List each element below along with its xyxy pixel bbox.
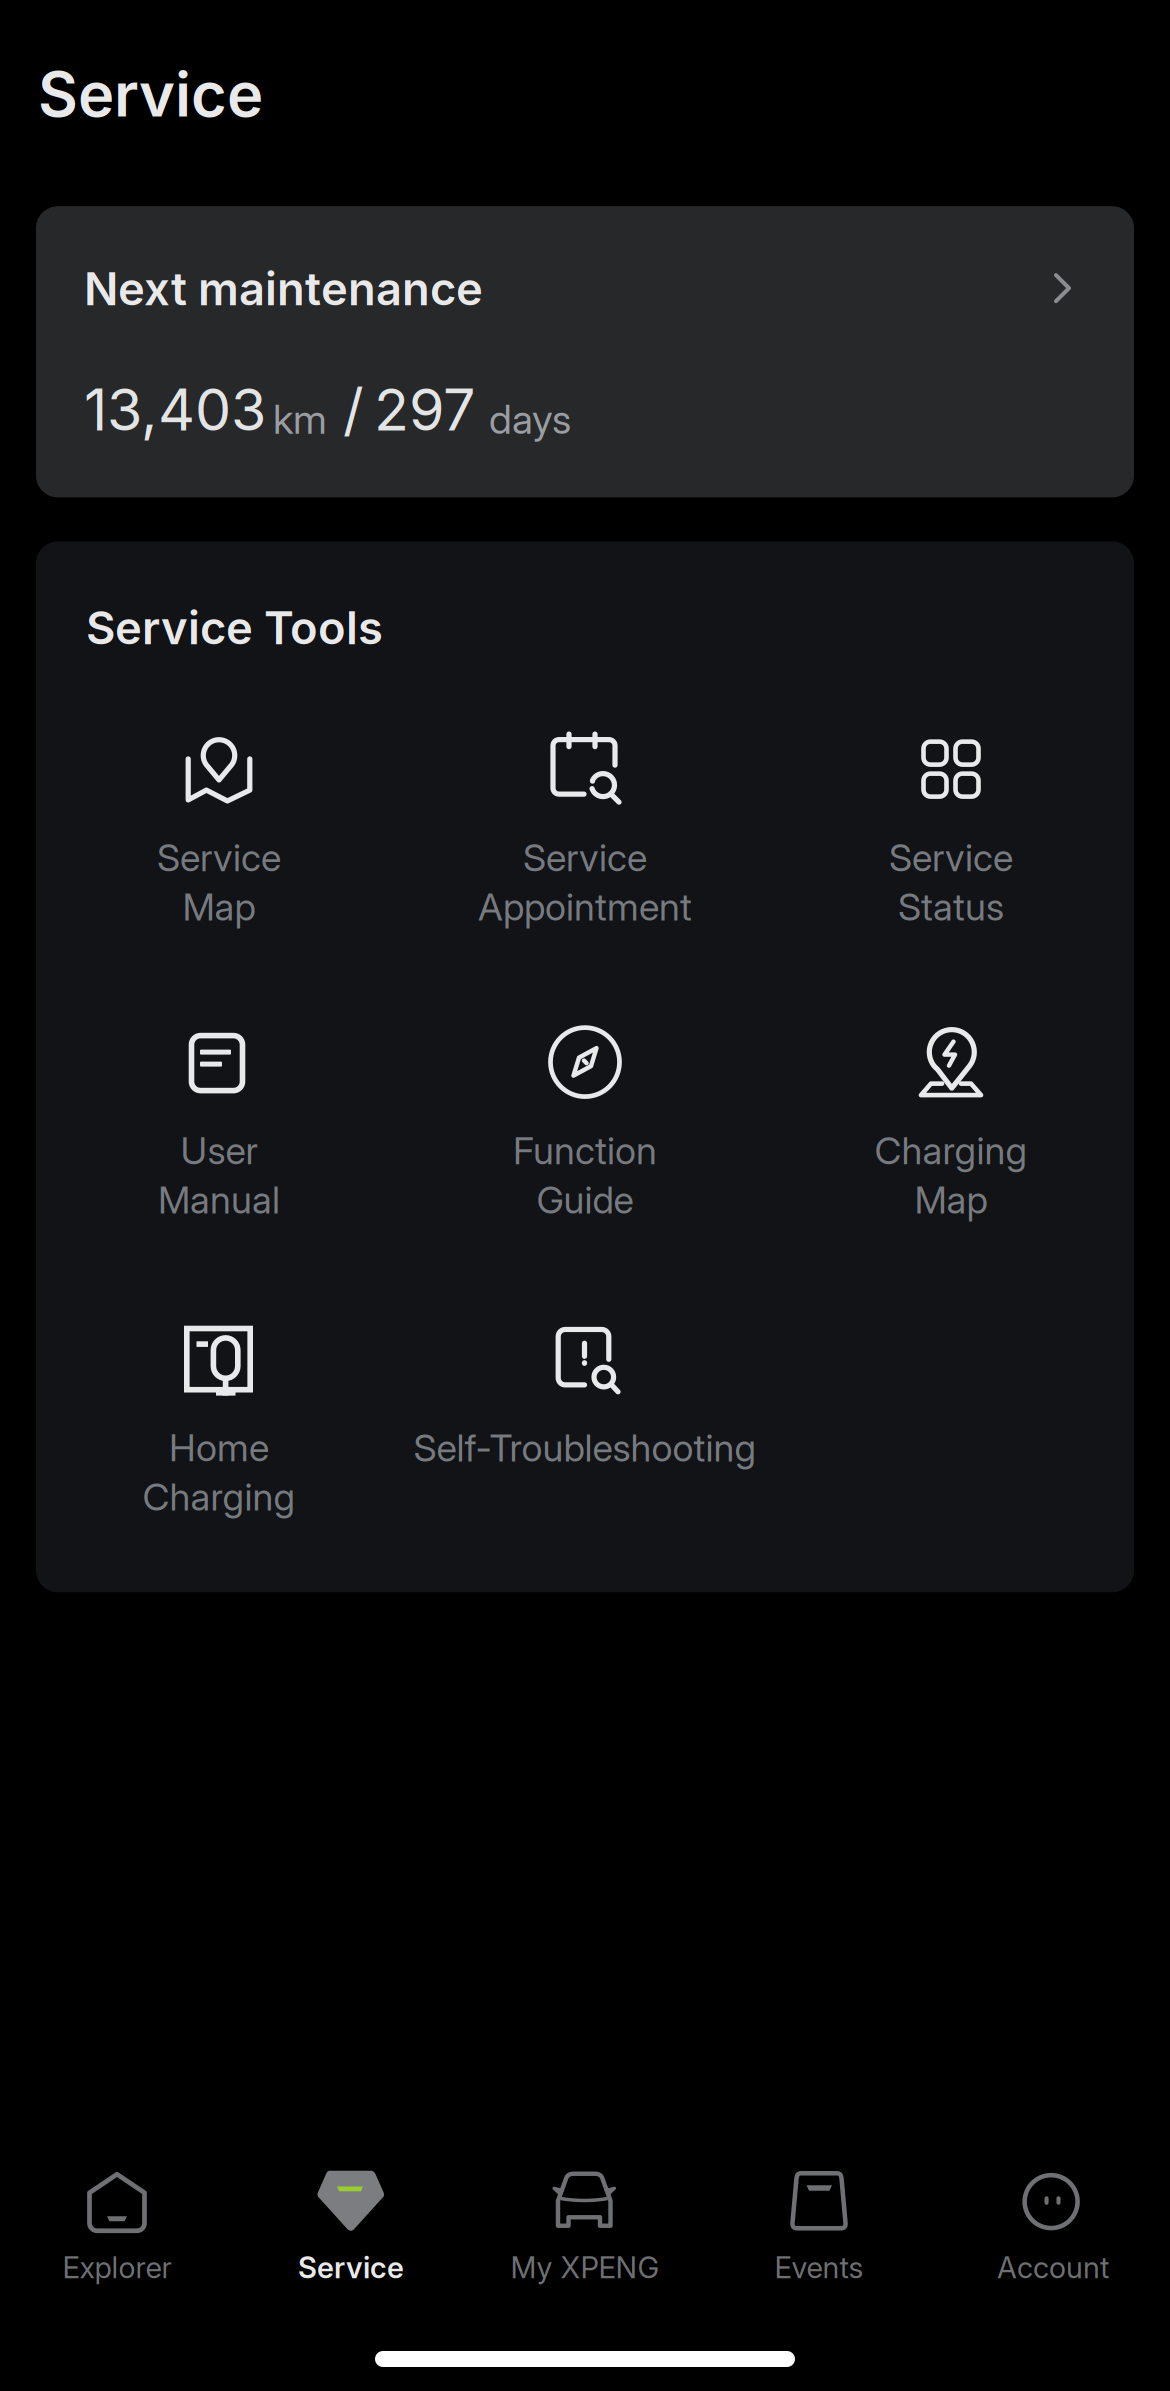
staticText: 297 — [374, 375, 475, 444]
button[interactable]: Service — [36, 734, 402, 929]
staticText: Service — [157, 835, 281, 880]
button[interactable]: Charging — [768, 1027, 1134, 1222]
staticText: Appointment — [478, 884, 692, 929]
button[interactable]: Next maintenance — [36, 206, 1134, 497]
staticText: Events — [774, 2250, 863, 2285]
staticText: Next maintenance — [84, 261, 483, 316]
button[interactable]: Function — [402, 1027, 768, 1222]
staticText: Service — [38, 57, 263, 131]
button[interactable]: Self-Troubleshooting — [402, 1324, 768, 1519]
staticText: Home — [169, 1425, 269, 1470]
button[interactable]: Account — [936, 2171, 1170, 2285]
staticText: Service — [889, 835, 1013, 880]
staticText: Service Tools — [86, 600, 383, 655]
staticText: Self-Troubleshooting — [413, 1425, 756, 1470]
staticText: Map — [914, 1177, 987, 1222]
staticText: Function — [513, 1128, 657, 1173]
button[interactable]: Events — [702, 2171, 936, 2285]
staticText: Guide — [536, 1177, 633, 1222]
staticText: days — [489, 395, 571, 443]
staticText: My XPENG — [510, 2250, 659, 2285]
button[interactable]: Service — [234, 2171, 468, 2285]
staticText: / — [343, 375, 364, 444]
button[interactable]: User — [36, 1027, 402, 1222]
staticText: User — [180, 1128, 257, 1173]
button[interactable]: Home — [36, 1324, 402, 1519]
button[interactable]: Service — [402, 734, 768, 929]
staticText: Charging — [142, 1474, 295, 1519]
staticText: Charging — [874, 1128, 1027, 1173]
staticText: Explorer — [62, 2250, 171, 2285]
staticText: Account — [997, 2250, 1109, 2285]
staticText: Status — [898, 884, 1004, 929]
button[interactable]: Service — [768, 734, 1134, 929]
staticText: Service — [523, 835, 647, 880]
staticText: 13,403 — [84, 375, 266, 444]
button[interactable]: Explorer — [0, 2171, 234, 2285]
staticText: km — [273, 395, 327, 443]
staticText: Service — [298, 2250, 404, 2285]
button[interactable]: My XPENG — [468, 2171, 702, 2285]
staticText: Manual — [158, 1177, 280, 1222]
staticText: Map — [182, 884, 255, 929]
